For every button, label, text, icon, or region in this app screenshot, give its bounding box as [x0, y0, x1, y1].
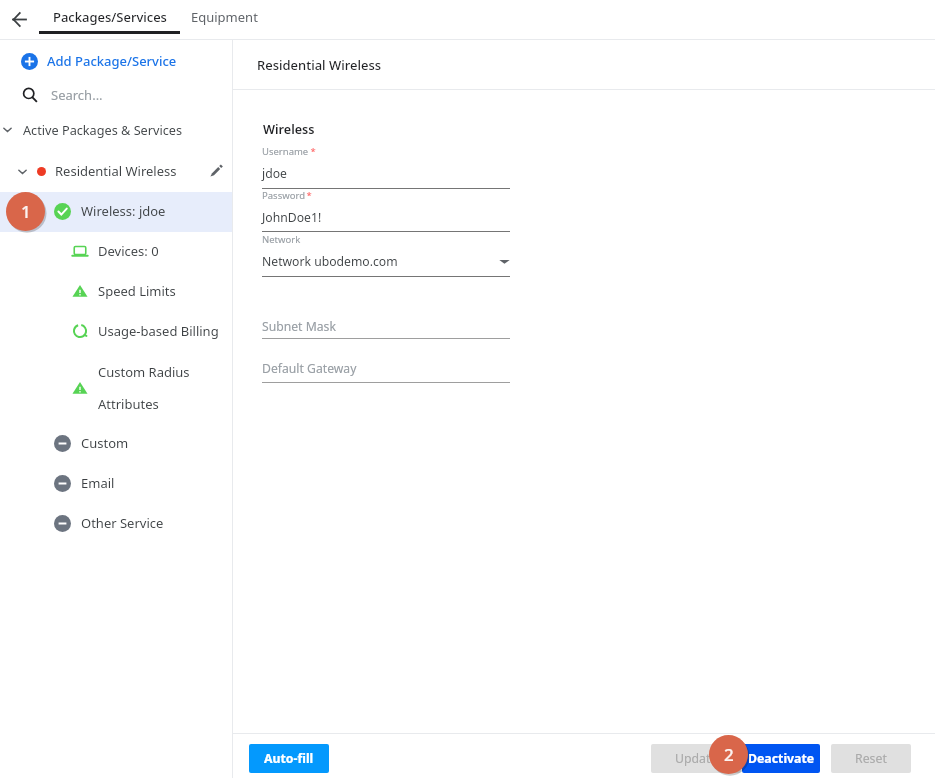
- staticText: Network: [262, 233, 301, 246]
- button[interactable]: Packages/Services: [39, 0, 180, 33]
- staticText: Speed Limits: [98, 282, 176, 300]
- staticText: Custom Radius: [98, 363, 190, 381]
- button[interactable]: Equipment: [184, 0, 264, 33]
- staticText: Other Service: [81, 514, 164, 532]
- staticText: *: [309, 145, 316, 158]
- button[interactable]: Deactivate: [742, 744, 820, 773]
- button[interactable]: Custom Radius: [0, 355, 232, 427]
- staticText: Deactivate: [748, 750, 815, 767]
- button[interactable]: Email: [0, 463, 232, 503]
- staticText: Residential Wireless: [55, 162, 177, 180]
- staticText: Equipment: [191, 8, 258, 26]
- staticText: Auto-fill: [264, 750, 314, 767]
- staticText: Custom: [81, 434, 129, 452]
- button[interactable]: Reset: [831, 744, 911, 773]
- staticText: JohnDoe1!: [262, 209, 322, 226]
- staticText: 1: [21, 200, 31, 223]
- staticText: Active Packages & Services: [23, 121, 183, 138]
- staticText: Add Package/Service: [47, 52, 177, 70]
- button[interactable]: Custom: [0, 423, 232, 463]
- staticText: Username: [262, 145, 309, 158]
- button[interactable]: Usage-based Billing: [0, 311, 232, 351]
- staticText: Residential Wireless: [257, 56, 382, 74]
- staticText: Password: [262, 189, 305, 202]
- staticText: Network ubodemo.com: [262, 253, 398, 270]
- staticText: Subnet Mask: [262, 318, 336, 335]
- staticText: Update: [675, 750, 718, 767]
- staticText: Wireless: [263, 121, 315, 138]
- staticText: jdoe: [262, 165, 287, 182]
- staticText: Reset: [855, 750, 887, 767]
- button[interactable]: Back: [6, 6, 32, 32]
- staticText: Packages/Services: [53, 8, 167, 26]
- button[interactable]: Wireless: jdoe: [0, 191, 232, 231]
- staticText: Wireless: jdoe: [81, 202, 166, 220]
- staticText: Email: [81, 474, 115, 492]
- button[interactable]: Other Service: [0, 503, 232, 543]
- staticText: *: [305, 189, 312, 202]
- staticText: Search...: [51, 86, 103, 104]
- staticText: 2: [724, 743, 734, 766]
- button[interactable]: Update: [651, 744, 741, 773]
- button[interactable]: Speed Limits: [0, 271, 232, 311]
- button[interactable]: Devices: 0: [0, 231, 232, 271]
- button[interactable]: Edit: [200, 155, 232, 187]
- button[interactable]: Add Package/Service: [0, 41, 232, 81]
- staticText: Attributes: [98, 395, 159, 413]
- staticText: Devices: 0: [98, 242, 159, 260]
- staticText: Usage-based Billing: [98, 322, 219, 340]
- button[interactable]: Step 2: [709, 735, 748, 774]
- button[interactable]: Auto-fill: [249, 744, 329, 773]
- button[interactable]: Search...: [0, 75, 232, 115]
- staticText: Default Gateway: [262, 360, 357, 377]
- button[interactable]: Step 1: [6, 192, 45, 231]
- button[interactable]: Residential Wireless: [0, 151, 232, 191]
- button[interactable]: Active Packages & Services: [0, 109, 232, 149]
